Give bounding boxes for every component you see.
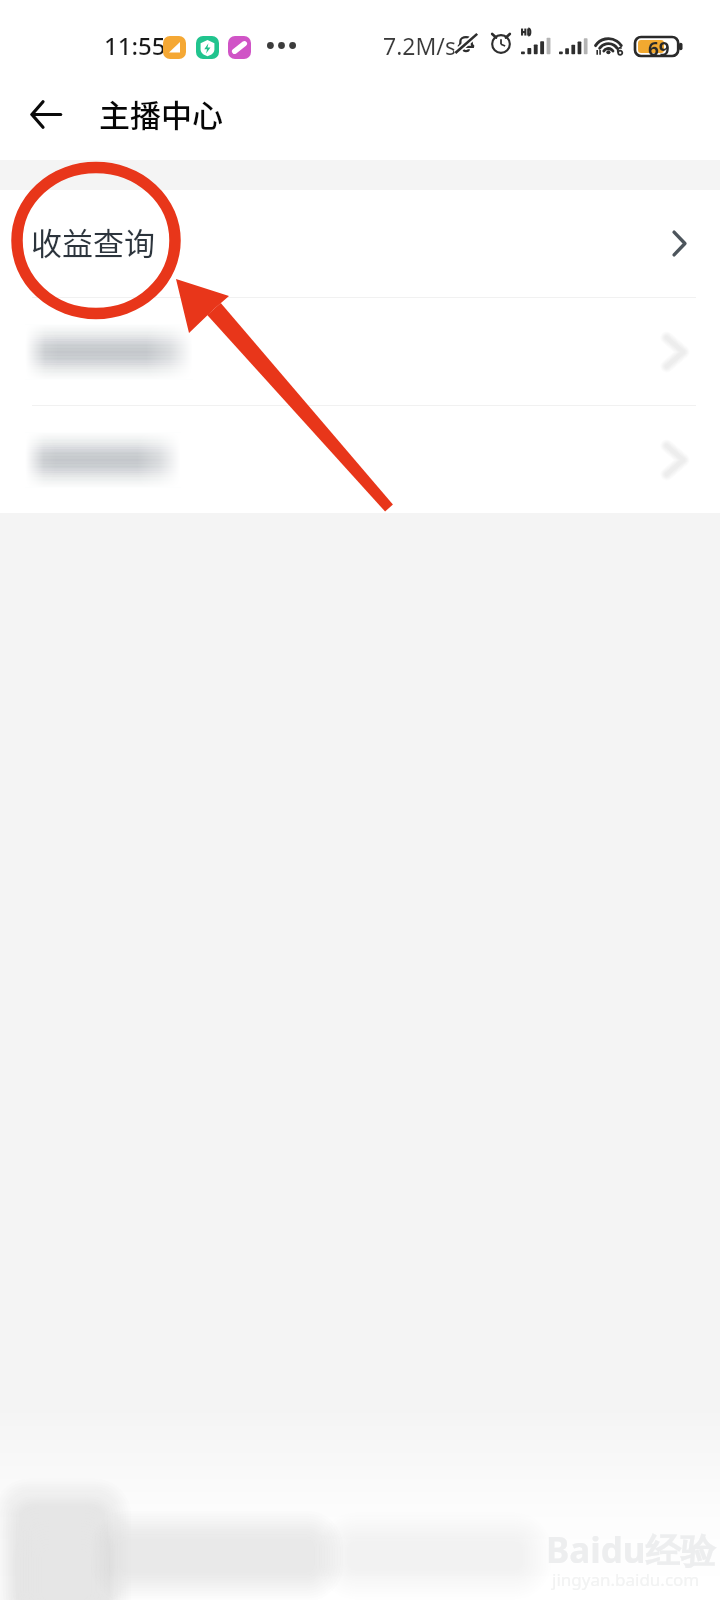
button[interactable]: Back (13, 81, 79, 147)
button[interactable] (0, 406, 720, 513)
button[interactable] (0, 298, 720, 405)
button[interactable]: 收益查询 (0, 190, 720, 297)
staticText: 主播中心 (99, 91, 223, 136)
staticText: Baidu经验 (546, 1526, 716, 1574)
staticText: 收益查询 (31, 219, 155, 264)
staticText: jingyan.baidu.com (552, 1568, 700, 1591)
staticText: 11:55 (104, 29, 166, 62)
staticText: 7.2M/s (383, 30, 456, 61)
staticText: 69 (648, 36, 670, 62)
